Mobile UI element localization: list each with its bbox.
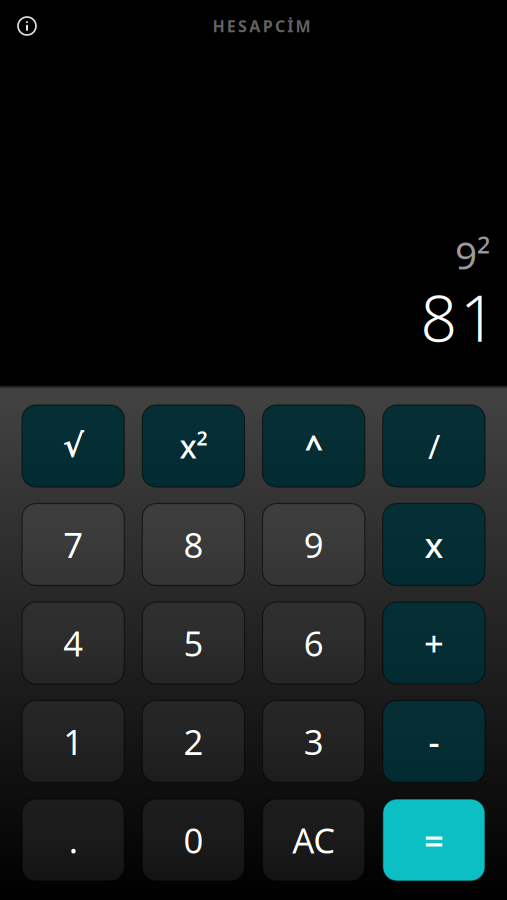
- button[interactable]: /: [383, 405, 485, 487]
- button[interactable]: 6: [262, 602, 365, 684]
- staticText: /: [428, 424, 440, 468]
- button[interactable]: =: [383, 799, 485, 881]
- button[interactable]: AC: [262, 799, 365, 881]
- button[interactable]: 1: [22, 700, 124, 782]
- staticText: 4: [63, 620, 83, 666]
- button[interactable]: 2: [142, 700, 244, 782]
- staticText: ^: [305, 425, 323, 467]
- button[interactable]: 8: [142, 503, 244, 585]
- button[interactable]: 4: [22, 602, 124, 684]
- button[interactable]: 7: [22, 503, 124, 585]
- button[interactable]: -: [383, 700, 485, 782]
- button[interactable]: x²: [142, 405, 244, 487]
- button[interactable]: .: [22, 799, 124, 881]
- staticText: AC: [292, 817, 335, 863]
- staticText: HESAPCİM: [212, 15, 311, 37]
- staticText: 8: [183, 521, 203, 567]
- staticText: 9²: [455, 229, 491, 280]
- staticText: .: [69, 817, 78, 863]
- staticText: 3: [304, 718, 324, 764]
- staticText: 9: [304, 521, 324, 567]
- button[interactable]: Info: [16, 15, 38, 37]
- staticText: 81: [420, 274, 497, 359]
- button[interactable]: ^: [262, 405, 365, 487]
- button[interactable]: 9: [262, 503, 365, 585]
- button[interactable]: 0: [142, 799, 244, 881]
- button[interactable]: 5: [142, 602, 244, 684]
- staticText: 7: [63, 521, 83, 567]
- button[interactable]: +: [383, 602, 485, 684]
- staticText: 5: [183, 620, 203, 666]
- staticText: =: [424, 817, 444, 863]
- staticText: -: [428, 718, 439, 764]
- staticText: x: [424, 521, 443, 567]
- button[interactable]: √: [22, 405, 124, 487]
- button[interactable]: 3: [262, 700, 365, 782]
- staticText: √: [63, 428, 84, 464]
- staticText: 1: [63, 718, 83, 764]
- staticText: +: [424, 620, 444, 666]
- staticText: 2: [183, 718, 203, 764]
- staticText: 0: [183, 817, 203, 863]
- button[interactable]: x: [383, 503, 485, 585]
- staticText: 6: [304, 620, 324, 666]
- staticText: x²: [179, 425, 207, 467]
